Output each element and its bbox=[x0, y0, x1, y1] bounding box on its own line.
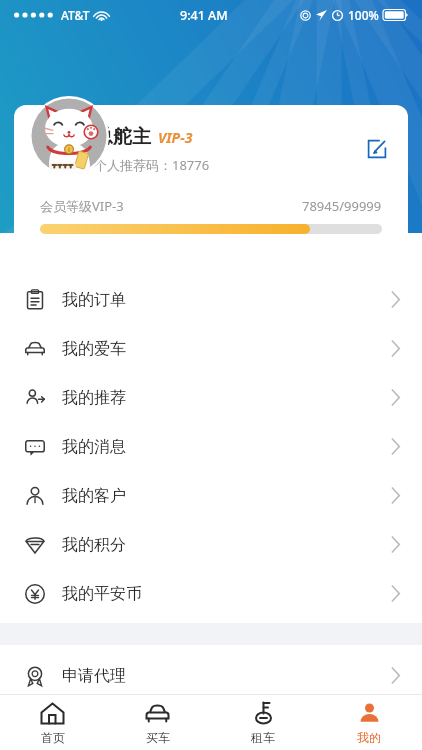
staticText: 我的 bbox=[357, 730, 381, 745]
staticText: 会员等级VIP-3 bbox=[40, 197, 124, 215]
staticText: 总舵主 bbox=[94, 125, 151, 149]
button[interactable]: 我的爱车 bbox=[0, 324, 422, 373]
staticText: AT&T bbox=[61, 7, 90, 23]
button[interactable]: 我的消息 bbox=[0, 422, 422, 471]
button[interactable]: 租车 bbox=[210, 695, 316, 750]
staticText: 我的订单 bbox=[62, 290, 126, 310]
button[interactable]: 编辑资料 bbox=[360, 132, 394, 166]
staticText: 78945/99999 bbox=[302, 197, 382, 215]
staticText: 我的平安币 bbox=[62, 584, 142, 604]
staticText: 9:41 AM bbox=[180, 7, 228, 24]
button[interactable]: 我的订单 bbox=[0, 275, 422, 324]
button[interactable]: 首页 bbox=[0, 695, 105, 750]
button[interactable]: 我的客户 bbox=[0, 471, 422, 520]
staticText: 租车 bbox=[251, 730, 275, 745]
staticText: 100% bbox=[348, 7, 379, 23]
button[interactable]: 申请代理 bbox=[0, 651, 422, 700]
button[interactable]: 我的积分 bbox=[0, 520, 422, 569]
staticText: VIP-3 bbox=[158, 128, 193, 147]
staticText: 我的消息 bbox=[62, 437, 126, 457]
button[interactable]: 我的 bbox=[316, 695, 422, 750]
button[interactable]: 我的推荐 bbox=[0, 373, 422, 422]
staticText: 我的积分 bbox=[62, 535, 126, 555]
staticText: 申请代理 bbox=[62, 666, 126, 686]
staticText: 买车 bbox=[146, 730, 170, 745]
button[interactable]: 我的平安币 bbox=[0, 569, 422, 618]
staticText: 我的爱车 bbox=[62, 339, 126, 359]
staticText: 我的客户 bbox=[62, 486, 126, 506]
staticText: 我的推荐 bbox=[62, 388, 126, 408]
staticText: 个人推荐码：18776 bbox=[94, 156, 210, 174]
staticText: 首页 bbox=[41, 730, 65, 745]
button[interactable]: 买车 bbox=[105, 695, 210, 750]
